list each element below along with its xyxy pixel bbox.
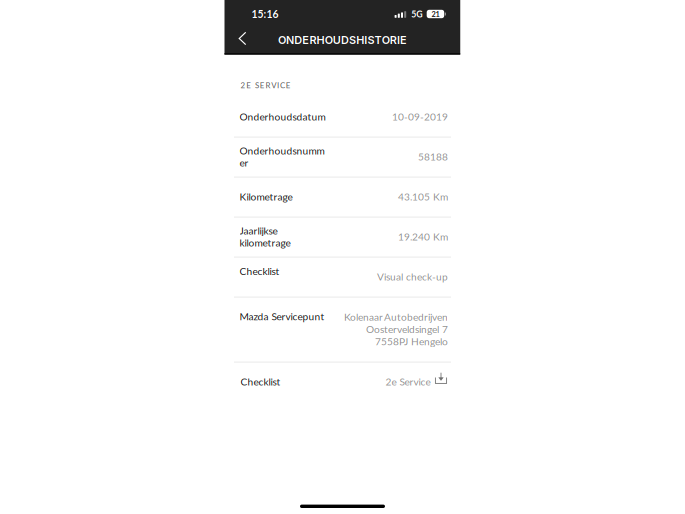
staticText: 10-09-2019 (391, 110, 447, 123)
staticText: 2E SERVICE (240, 81, 291, 90)
staticText: Kilometrage (239, 190, 292, 203)
staticText: Visual check-up (376, 270, 447, 283)
staticText: Onderhoudsnumm er (239, 144, 324, 169)
staticText: Mazda Servicepunt (239, 310, 324, 322)
button[interactable]: Checklist (224, 362, 460, 402)
staticText: Onderhoudsdatum (239, 110, 325, 123)
staticText: Checklist (240, 375, 280, 388)
staticText: 15:16 (251, 8, 278, 20)
staticText: 21 (431, 9, 439, 18)
staticText: 43.105 Km (397, 190, 447, 203)
staticText: Kolenaar Autobedrijven Oosterveldsingel … (343, 311, 447, 347)
staticText: 5G (411, 9, 422, 19)
staticText: ONDERHOUDSHISTORIE (278, 33, 407, 47)
staticText: 58188 (417, 150, 447, 163)
staticText: 2e Service (385, 375, 430, 388)
staticText: 19.240 Km (397, 230, 447, 243)
button[interactable]: Back (235, 25, 255, 53)
staticText: Jaarlijkse kilometrage (239, 224, 290, 249)
staticText: Checklist (239, 265, 279, 277)
